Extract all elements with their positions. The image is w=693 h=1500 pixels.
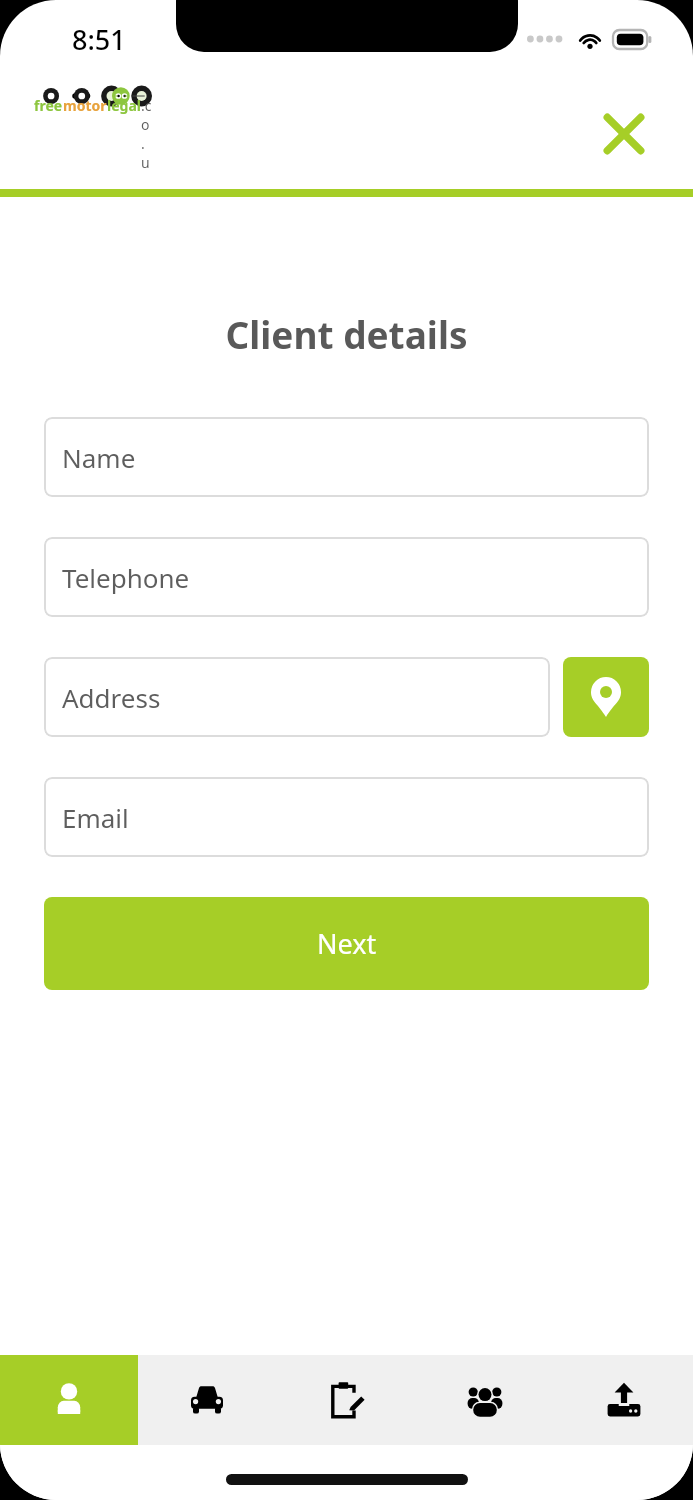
staticText: .co.uk [141, 96, 152, 172]
staticText: motor [63, 96, 107, 115]
button[interactable]: Vehicle [138, 1355, 276, 1445]
button[interactable]: Client details [0, 1355, 138, 1445]
button[interactable]: Close [591, 101, 657, 167]
button[interactable]: Find address by location [563, 657, 649, 737]
staticText: Email [62, 800, 129, 835]
staticText: Address [62, 680, 161, 715]
staticText: 8:51 [72, 21, 126, 58]
button[interactable]: Passengers [415, 1355, 554, 1445]
button[interactable]: Address [44, 657, 550, 737]
staticText: legal [107, 96, 141, 115]
staticText: Client details [0, 309, 693, 359]
staticText: free [34, 96, 63, 115]
staticText: Name [62, 440, 136, 475]
button[interactable]: Upload [554, 1355, 693, 1445]
button[interactable]: Next [44, 897, 649, 990]
button[interactable]: Email [44, 777, 649, 857]
button[interactable]: Telephone [44, 537, 649, 617]
button[interactable]: Name [44, 417, 649, 497]
staticText: Telephone [62, 560, 190, 595]
button[interactable]: Claim form [276, 1355, 415, 1445]
staticText: Next [317, 925, 377, 962]
button[interactable]: free [34, 96, 152, 172]
